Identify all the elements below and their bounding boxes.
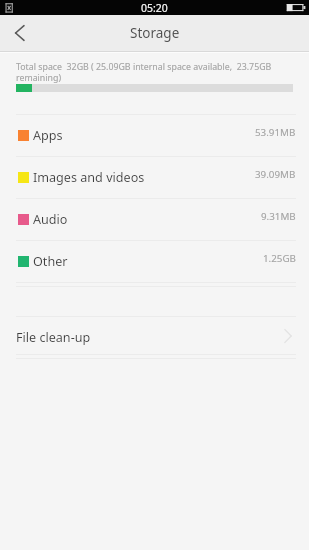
staticText: Audio <box>33 211 68 228</box>
button[interactable]: File clean-up <box>0 317 309 354</box>
staticText: 1.25GB <box>263 252 296 265</box>
staticText: Storage <box>130 24 180 42</box>
button[interactable]: Images and videos <box>0 157 309 198</box>
button[interactable]: Audio <box>0 199 309 240</box>
staticText: Apps <box>33 127 63 144</box>
button[interactable]: Apps <box>0 115 309 156</box>
staticText: Other <box>33 253 68 270</box>
staticText: 05:20 <box>141 1 168 15</box>
button[interactable]: Back <box>0 15 36 51</box>
staticText: Total space 32GB ( 25.09GB internal spac… <box>16 61 293 84</box>
staticText: File clean-up <box>16 329 91 346</box>
staticText: 39.09MB <box>255 168 296 181</box>
staticText: 9.31MB <box>261 210 296 223</box>
staticText: 53.91MB <box>255 126 296 139</box>
button[interactable]: Other <box>0 241 309 282</box>
staticText: Images and videos <box>33 169 145 186</box>
